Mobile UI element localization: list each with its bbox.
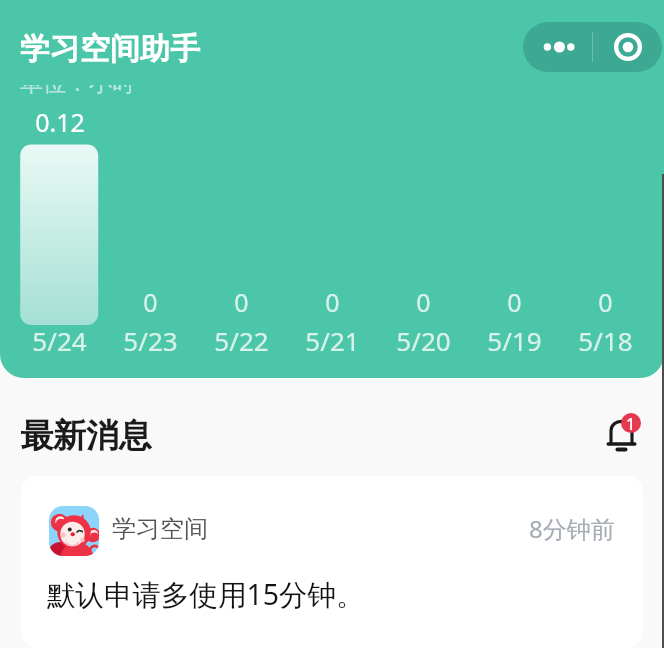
staticText: 8分钟前 — [529, 512, 615, 545]
staticText: 最新消息 — [20, 415, 152, 457]
staticText: 5/18 — [578, 323, 633, 358]
staticText: 0.12 — [35, 105, 85, 139]
button[interactable]: More options — [523, 22, 592, 72]
staticText: 1 — [626, 413, 636, 433]
staticText: 0 — [234, 285, 249, 319]
staticText: 5/20 — [396, 323, 451, 358]
staticText: 单位：小时 — [20, 85, 135, 95]
button[interactable]: 学习空间 — [21, 476, 643, 648]
staticText: 0 — [416, 285, 431, 319]
staticText: 5/21 — [305, 323, 360, 358]
button[interactable]: Notifications — [597, 404, 643, 450]
staticText: 学习空间 — [112, 514, 208, 544]
staticText: 默认申请多使用15分钟。 — [47, 575, 365, 614]
staticText: 0 — [507, 285, 522, 319]
staticText: 5/19 — [487, 323, 542, 358]
staticText: 5/23 — [123, 323, 178, 358]
staticText: 0 — [598, 285, 613, 319]
staticText: 0 — [143, 285, 158, 319]
staticText: 0 — [325, 285, 340, 319]
staticText: 学习空间助手 — [20, 30, 200, 68]
staticText: 5/22 — [214, 323, 269, 358]
button[interactable]: Close mini program — [593, 22, 662, 72]
staticText: 5/24 — [32, 323, 87, 358]
